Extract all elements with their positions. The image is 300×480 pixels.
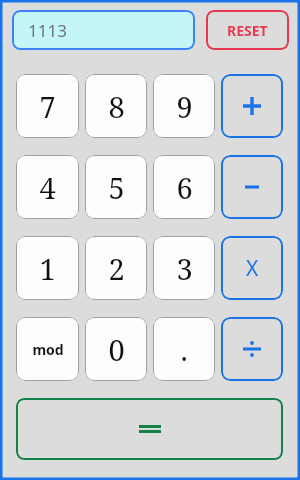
staticText: 7 — [39, 87, 56, 126]
staticText: 5 — [108, 168, 125, 207]
button[interactable]: 1 — [16, 236, 79, 300]
staticText: 9 — [176, 87, 193, 126]
button[interactable]: 4 — [16, 155, 79, 219]
staticText: 8 — [108, 87, 125, 126]
button[interactable]: Divide — [221, 317, 283, 381]
button[interactable]: 5 — [85, 155, 147, 219]
button[interactable]: 2 — [85, 236, 147, 300]
button[interactable]: 7 — [16, 74, 79, 138]
staticText: 6 — [176, 168, 193, 207]
staticText: 3 — [176, 249, 193, 288]
staticText: mod — [32, 340, 64, 359]
staticText: 4 — [39, 168, 56, 207]
button[interactable]: 6 — [153, 155, 215, 219]
staticText: . — [180, 330, 188, 369]
staticText: X — [246, 254, 259, 283]
staticText: 1 — [39, 249, 56, 288]
button[interactable]: Plus — [221, 74, 283, 138]
staticText: 2 — [108, 249, 125, 288]
button[interactable]: mod — [16, 317, 79, 381]
button[interactable]: Equals — [16, 398, 283, 460]
button[interactable]: Minus — [221, 155, 283, 219]
button[interactable]: . — [153, 317, 215, 381]
button[interactable]: 1113 — [12, 10, 195, 50]
button[interactable]: 0 — [85, 317, 147, 381]
staticText: 1113 — [28, 19, 67, 42]
button[interactable]: 8 — [85, 74, 147, 138]
staticText: 0 — [108, 330, 125, 369]
button[interactable]: 9 — [153, 74, 215, 138]
button[interactable]: RESET — [206, 10, 289, 50]
button[interactable]: Multiply — [221, 236, 283, 300]
button[interactable]: 3 — [153, 236, 215, 300]
staticText: RESET — [227, 21, 268, 40]
